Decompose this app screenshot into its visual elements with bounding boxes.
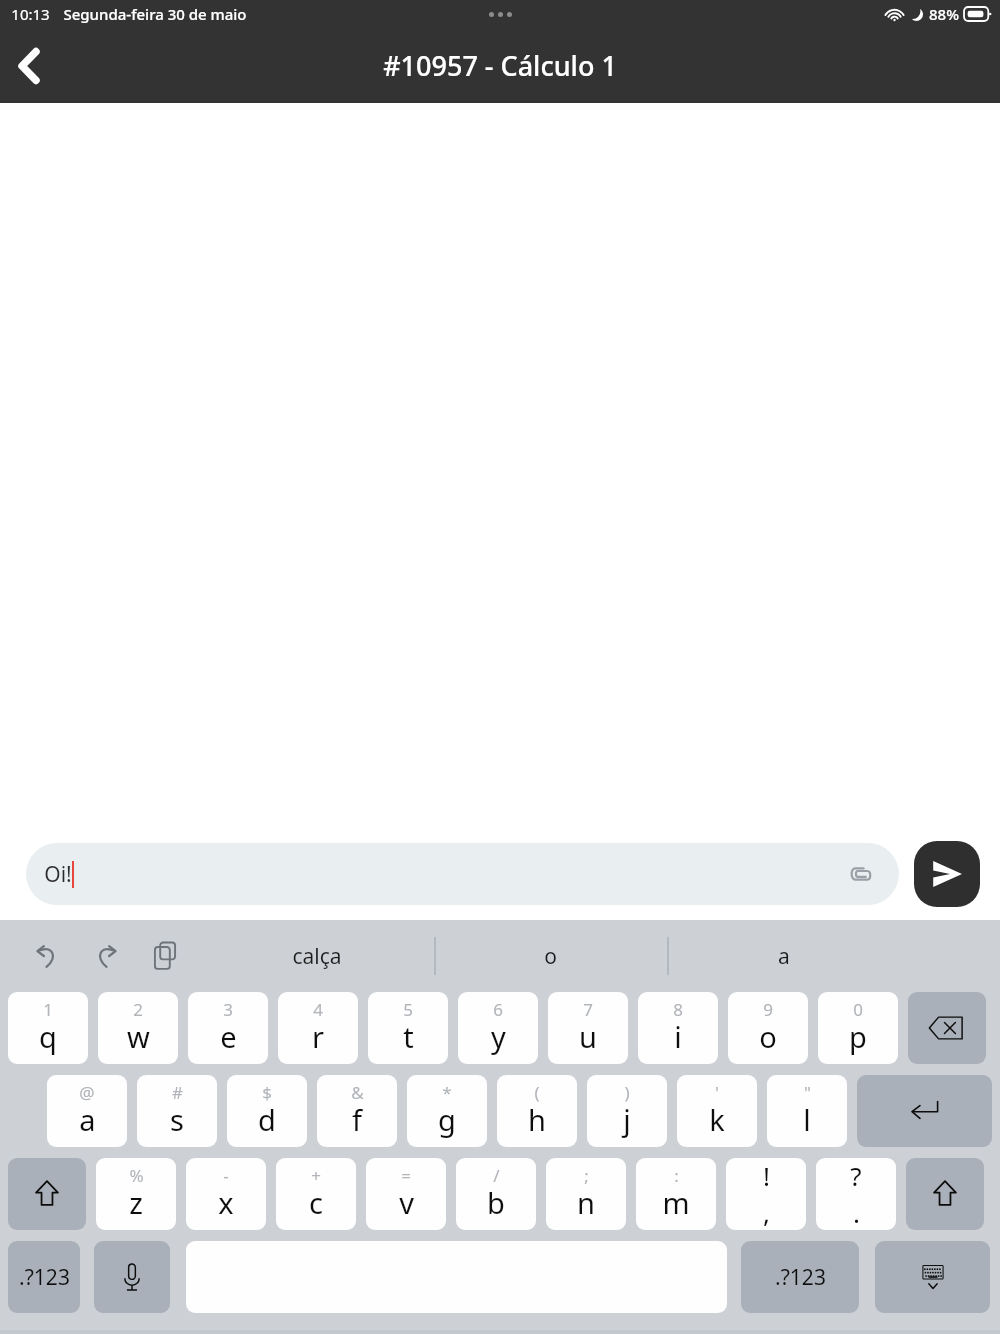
button[interactable]: 5 <box>368 992 448 1064</box>
staticText: ' <box>715 1081 719 1104</box>
staticText: 4 <box>313 998 323 1021</box>
button[interactable]: 9 <box>728 992 808 1064</box>
staticText: k <box>709 1100 725 1139</box>
button[interactable]: ' <box>677 1075 757 1147</box>
button[interactable]: 1 <box>8 992 88 1064</box>
staticText: Oi! <box>44 860 72 889</box>
staticText: 2 <box>133 998 143 1021</box>
button[interactable]: 8 <box>638 992 718 1064</box>
staticText: .?123 <box>19 1263 70 1292</box>
button[interactable]: Hide keyboard <box>875 1241 990 1313</box>
staticText: z <box>129 1183 143 1222</box>
staticText: n <box>577 1183 595 1222</box>
button[interactable]: .?123 <box>8 1241 80 1313</box>
button[interactable]: .?123 <box>741 1241 859 1313</box>
staticText: 88% <box>929 4 959 24</box>
button[interactable]: 4 <box>278 992 358 1064</box>
staticText: o <box>544 942 557 971</box>
staticText: y <box>491 1017 506 1056</box>
staticText: 5 <box>403 998 413 1021</box>
button[interactable]: Back <box>0 37 58 95</box>
button[interactable]: ; <box>546 1158 626 1230</box>
staticText: a <box>79 1100 96 1139</box>
staticText: t <box>403 1017 414 1056</box>
button[interactable]: - <box>186 1158 266 1230</box>
button[interactable]: Redo <box>85 935 127 977</box>
staticText: q <box>39 1017 57 1056</box>
staticText: g <box>438 1100 456 1139</box>
button[interactable]: a <box>667 920 900 992</box>
button[interactable]: " <box>767 1075 847 1147</box>
button[interactable]: calça <box>200 920 434 992</box>
button[interactable]: Backspace <box>908 992 986 1064</box>
button[interactable]: 3 <box>188 992 268 1064</box>
staticText: i <box>674 1017 682 1056</box>
button[interactable]: ? <box>816 1158 896 1230</box>
button[interactable]: ) <box>587 1075 667 1147</box>
staticText: p <box>849 1017 867 1056</box>
staticText: ( <box>534 1081 540 1104</box>
staticText: f <box>352 1100 362 1139</box>
button[interactable]: Send <box>914 841 980 907</box>
staticText: - <box>223 1164 229 1187</box>
staticText: " <box>804 1081 811 1104</box>
button[interactable]: @ <box>47 1075 127 1147</box>
staticText: j <box>623 1100 631 1139</box>
staticText: 0 <box>853 998 863 1021</box>
button[interactable]: % <box>96 1158 176 1230</box>
staticText: #10957 - Cálculo 1 <box>383 47 617 84</box>
button[interactable]: = <box>366 1158 446 1230</box>
button[interactable]: Voice input <box>94 1241 170 1313</box>
staticText: m <box>662 1183 690 1222</box>
button[interactable]: 6 <box>458 992 538 1064</box>
staticText: @ <box>79 1081 95 1104</box>
button[interactable]: 7 <box>548 992 628 1064</box>
staticText: d <box>258 1100 276 1139</box>
button[interactable]: / <box>456 1158 536 1230</box>
staticText: , <box>763 1195 770 1230</box>
staticText: / <box>493 1164 500 1187</box>
staticText: 10:13 <box>11 4 50 24</box>
button[interactable]: ( <box>497 1075 577 1147</box>
staticText: .?123 <box>775 1263 826 1292</box>
button[interactable]: 0 <box>818 992 898 1064</box>
button[interactable]: Undo <box>26 935 68 977</box>
staticText: x <box>218 1183 234 1222</box>
button[interactable]: # <box>137 1075 217 1147</box>
staticText: 9 <box>763 998 773 1021</box>
staticText: % <box>129 1164 144 1187</box>
staticText: * <box>442 1081 452 1104</box>
staticText: ) <box>624 1081 630 1104</box>
button[interactable]: $ <box>227 1075 307 1147</box>
staticText: v <box>399 1183 414 1222</box>
staticText: b <box>487 1183 505 1222</box>
button[interactable]: Clipboard <box>144 935 186 977</box>
button[interactable]: Return <box>857 1075 992 1147</box>
staticText: 7 <box>583 998 593 1021</box>
button[interactable]: Oi! <box>26 843 899 905</box>
staticText: h <box>528 1100 546 1139</box>
staticText: : <box>674 1164 679 1187</box>
staticText: calça <box>292 942 342 971</box>
button[interactable]: o <box>434 920 667 992</box>
staticText: 8 <box>673 998 683 1021</box>
staticText: ; <box>584 1164 589 1187</box>
button[interactable]: ! <box>726 1158 806 1230</box>
button[interactable]: Attach file <box>843 856 879 892</box>
staticText: + <box>311 1164 321 1187</box>
button[interactable]: & <box>317 1075 397 1147</box>
staticText: r <box>312 1017 324 1056</box>
button[interactable]: * <box>407 1075 487 1147</box>
staticText: s <box>170 1100 184 1139</box>
staticText: e <box>220 1017 237 1056</box>
button[interactable]: Shift <box>8 1158 86 1230</box>
button[interactable]: : <box>636 1158 716 1230</box>
staticText: 1 <box>43 998 53 1021</box>
staticText: $ <box>262 1081 272 1104</box>
button[interactable]: + <box>276 1158 356 1230</box>
button[interactable]: 2 <box>98 992 178 1064</box>
staticText: 3 <box>223 998 233 1021</box>
staticText: o <box>759 1017 777 1056</box>
button[interactable]: Shift <box>906 1158 984 1230</box>
